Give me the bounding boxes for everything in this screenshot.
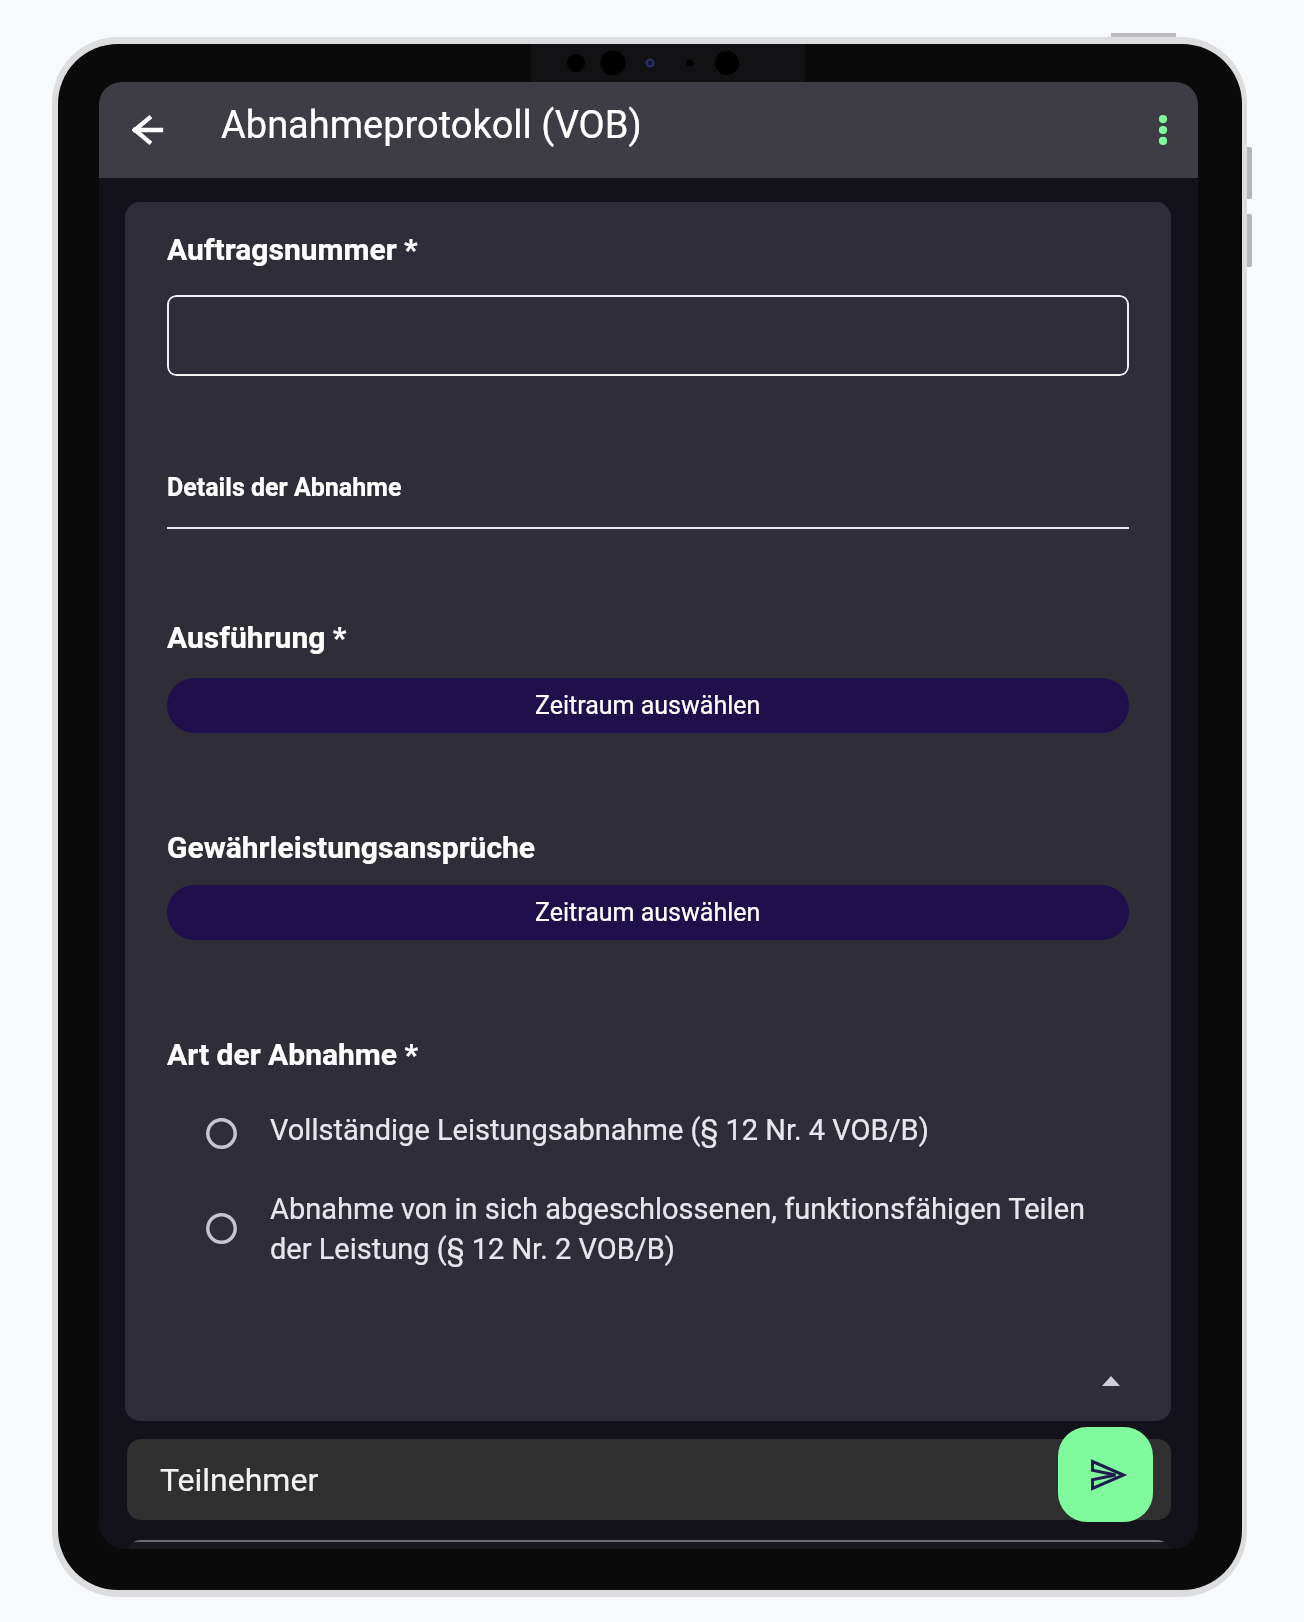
button[interactable]: Zurück [109, 82, 185, 178]
staticText: Abnahmeprotokoll (VOB) [221, 103, 642, 148]
staticText: Vollständige Leistungsabnahme (§ 12 Nr. … [270, 1113, 929, 1147]
staticText: Zeitraum auswählen [535, 898, 761, 927]
button[interactable]: Abnahme von in sich abgeschlossenen, fun… [199, 1173, 1129, 1270]
staticText: Zeitraum auswählen [535, 691, 761, 720]
button[interactable] [167, 295, 1129, 376]
button[interactable]: Mehr Optionen [1123, 82, 1198, 178]
button[interactable]: Vollständige Leistungsabnahme (§ 12 Nr. … [199, 1105, 1129, 1161]
button[interactable]: Zeitraum auswählen [167, 678, 1129, 733]
button[interactable]: Teilnehmer [127, 1439, 1171, 1520]
button[interactable]: Senden [1058, 1427, 1153, 1522]
staticText: Gewährleistungsansprüche [167, 830, 536, 865]
staticText: Details der Abnahme [167, 473, 402, 502]
button[interactable]: Zeitraum auswählen [167, 885, 1129, 940]
staticText: Art der Abnahme * [167, 1037, 419, 1072]
staticText: Teilnehmer [160, 1461, 319, 1499]
staticText: Abnahme von in sich abgeschlossenen, fun… [270, 1192, 1086, 1266]
staticText: Ausführung * [167, 620, 347, 655]
staticText: Auftragsnummer * [167, 232, 418, 267]
button[interactable]: Einklappen [1088, 1358, 1134, 1404]
